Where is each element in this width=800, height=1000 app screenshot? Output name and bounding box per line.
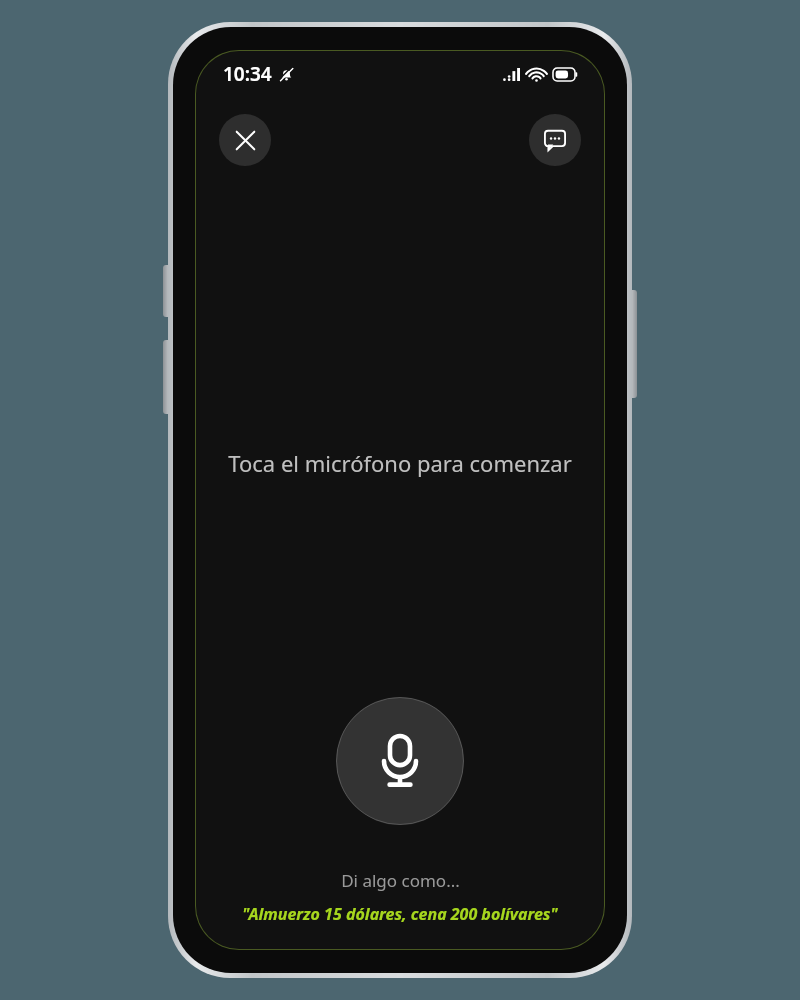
staticText: Di algo como...	[341, 869, 460, 892]
staticText: Toca el micrófono para comenzar	[208, 448, 592, 478]
button[interactable]: Chat	[529, 114, 581, 166]
staticText: "Almuerzo 15 dólares, cena 200 bolívares…	[204, 903, 596, 925]
button[interactable]: Cerrar	[219, 114, 271, 166]
staticText: 10:34	[223, 61, 272, 87]
button[interactable]: Micrófono	[336, 697, 464, 825]
